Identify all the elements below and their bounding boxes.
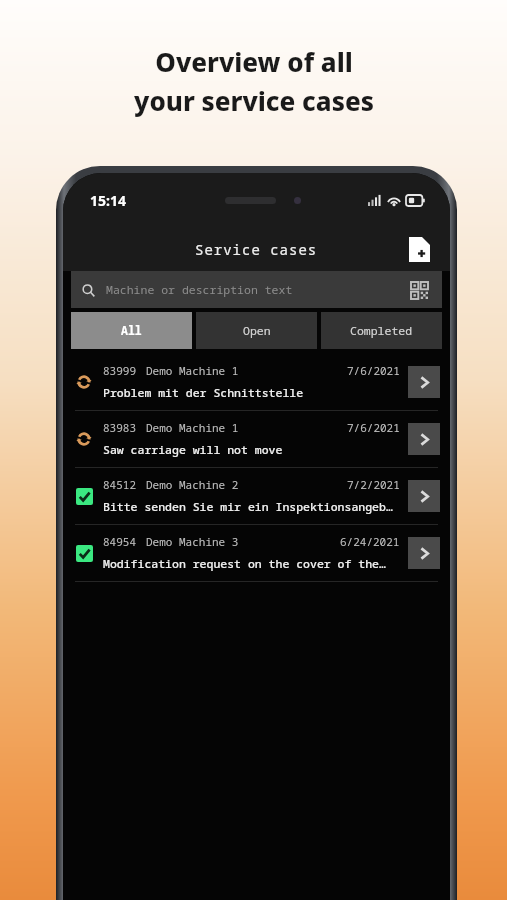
button[interactable]: Open case 83983 (408, 423, 440, 455)
staticText: Service cases (195, 240, 318, 259)
button[interactable]: New service case (402, 232, 436, 266)
staticText: Demo Machine 3 (146, 534, 239, 549)
staticText: 15:14 (90, 191, 126, 210)
staticText: 84512 (103, 477, 136, 492)
staticText: Modification request on the cover of the… (103, 556, 386, 572)
staticText: 84954 (103, 534, 136, 549)
button[interactable]: Open case 83999 (408, 366, 440, 398)
staticText: Saw carriage will not move (103, 442, 283, 458)
button[interactable]: Open case 84512 (408, 480, 440, 512)
button[interactable]: 84512 (63, 468, 450, 525)
staticText: 7/2/2021 (347, 477, 400, 492)
staticText: 7/6/2021 (347, 420, 400, 435)
staticText: All (121, 323, 142, 339)
staticText: Open (243, 323, 271, 339)
staticText: Demo Machine 1 (146, 363, 239, 378)
button[interactable]: All (71, 312, 192, 349)
button[interactable]: Machine or description text (71, 271, 442, 308)
staticText: Machine or description text (106, 282, 293, 298)
button[interactable]: Open (196, 312, 317, 349)
staticText: 6/24/2021 (340, 534, 400, 549)
staticText: Bitte senden Sie mir ein Inspektionsange… (103, 499, 393, 515)
staticText: Overview of all (155, 44, 353, 79)
staticText: 83983 (103, 420, 136, 435)
staticText: your service cases (134, 83, 374, 118)
button[interactable]: 83999 (63, 354, 450, 411)
button[interactable]: Open case 84954 (408, 537, 440, 569)
button[interactable]: 84954 (63, 525, 450, 582)
staticText: Completed (350, 323, 413, 339)
button[interactable]: 83983 (63, 411, 450, 468)
staticText: 83999 (103, 363, 136, 378)
staticText: Demo Machine 2 (146, 477, 239, 492)
button[interactable]: Scan QR code (407, 278, 431, 302)
button[interactable]: Completed (321, 312, 442, 349)
staticText: Problem mit der Schnittstelle (103, 385, 304, 401)
staticText: Demo Machine 1 (146, 420, 239, 435)
staticText: 7/6/2021 (347, 363, 400, 378)
